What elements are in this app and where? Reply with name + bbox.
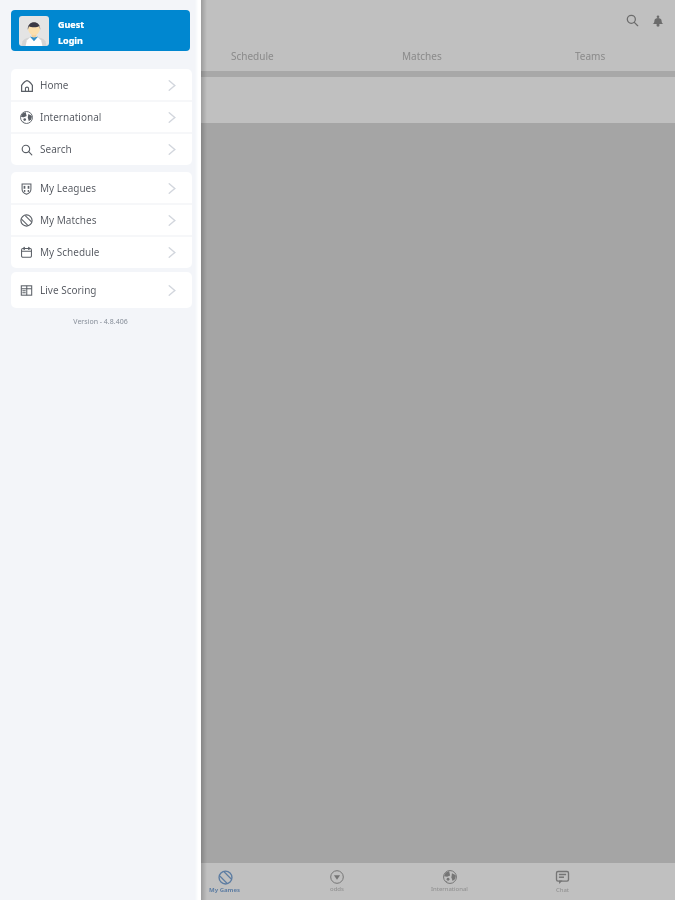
button[interactable]: Matches <box>337 41 506 70</box>
staticText: Guest <box>58 18 85 30</box>
button[interactable]: Notifications <box>645 8 670 33</box>
staticText: Live Scoring <box>40 283 97 297</box>
staticText: Schedule <box>231 49 274 63</box>
staticText: My Leagues <box>40 181 97 195</box>
button[interactable]: International <box>393 863 506 900</box>
button[interactable]: My Leagues <box>11 172 192 204</box>
button[interactable]: My Games <box>0 41 168 70</box>
staticText: Chat <box>556 886 570 894</box>
staticText: Matches <box>402 49 442 63</box>
staticText: International <box>40 110 102 124</box>
staticText: My Schedule <box>40 245 100 259</box>
button[interactable]: International <box>11 101 192 133</box>
staticText: odds <box>330 885 344 893</box>
button[interactable]: My Schedule <box>11 236 192 268</box>
staticText: My Matches <box>40 213 97 227</box>
staticText: My Games <box>209 886 241 894</box>
staticText: Search <box>40 142 72 156</box>
staticText: Teams <box>575 49 606 63</box>
button[interactable]: Guest <box>11 10 190 51</box>
button[interactable]: My Games <box>169 863 281 900</box>
button[interactable]: Live Scoring <box>11 272 192 308</box>
button[interactable]: Teams <box>506 41 675 70</box>
staticText: My Games <box>59 49 109 63</box>
staticText: International <box>431 885 468 893</box>
button[interactable]: Search <box>11 133 192 165</box>
button[interactable]: odds <box>281 863 393 900</box>
button[interactable]: Chat <box>506 863 619 900</box>
staticText: Version - 4.8.406 <box>0 317 201 327</box>
button[interactable]: Schedule <box>168 41 337 70</box>
button[interactable]: Search <box>620 8 645 33</box>
button[interactable]: Home <box>11 69 192 101</box>
staticText: Home <box>40 78 69 92</box>
button[interactable]: My Matches <box>11 204 192 236</box>
staticText: Login <box>58 34 83 46</box>
